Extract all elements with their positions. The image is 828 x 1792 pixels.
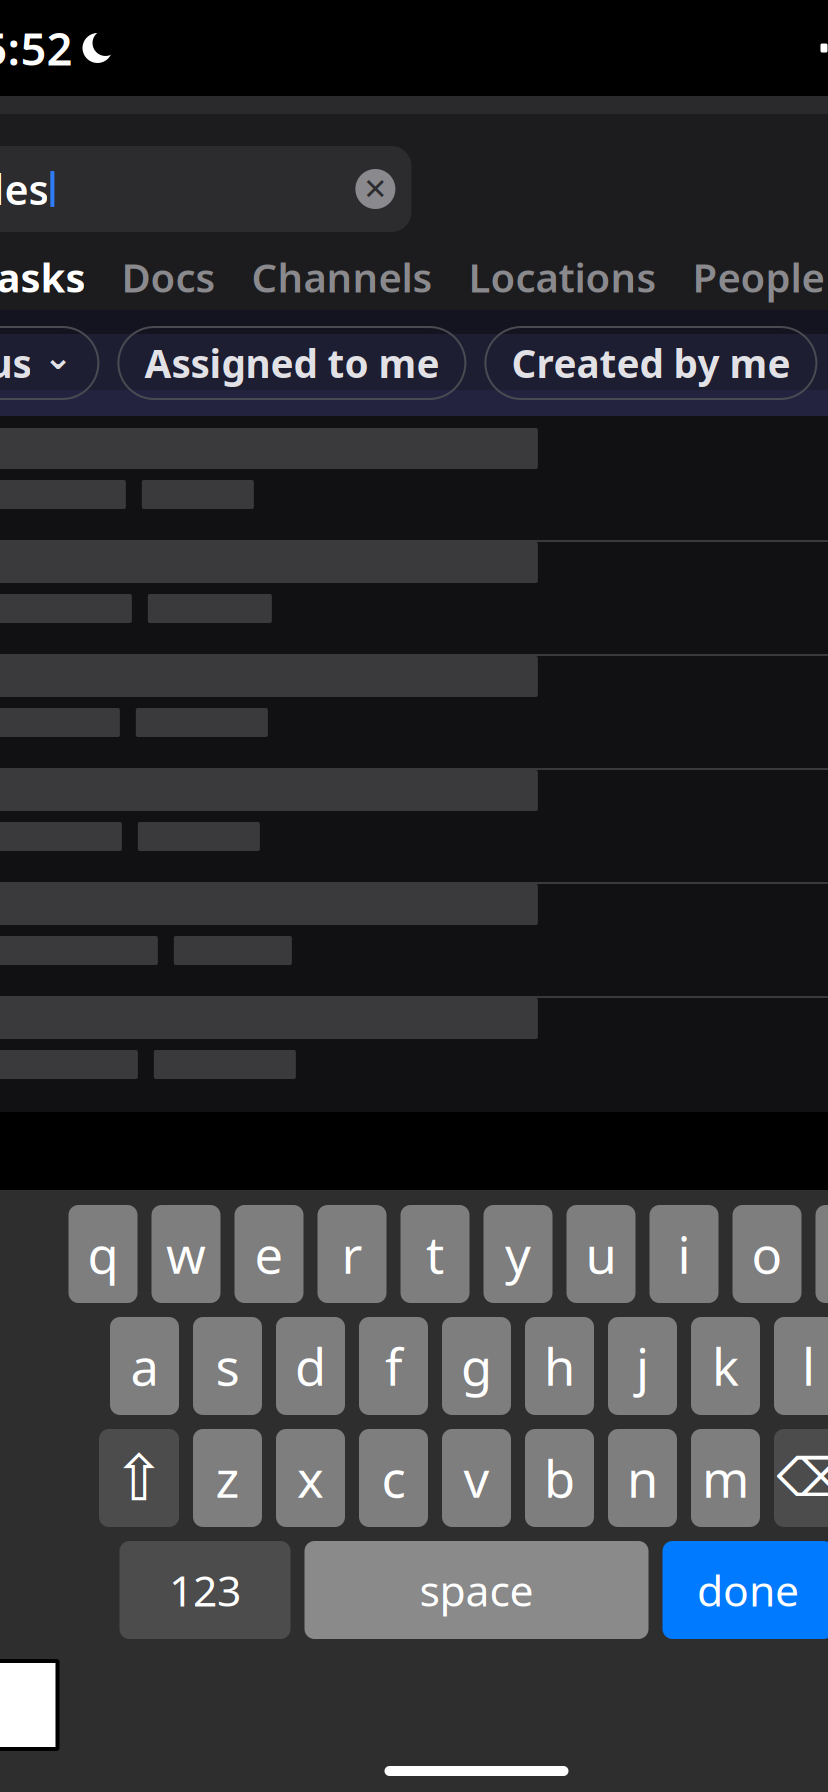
button[interactable]: Clear text [349,163,401,215]
staticText: People [692,250,824,303]
staticText: m [702,1444,749,1512]
staticText: ✕ [363,172,388,206]
staticText: e [254,1220,283,1288]
staticText: o [751,1220,782,1288]
staticText: q [87,1220,118,1288]
button[interactable]: r [317,1205,386,1303]
button[interactable]: f [359,1317,428,1415]
staticText: n [627,1444,658,1512]
staticText: files [0,162,48,216]
button[interactable]: t [400,1205,469,1303]
staticText: v [463,1444,489,1512]
button[interactable]: x [276,1429,345,1527]
button[interactable]: m [691,1429,760,1527]
staticText: 5:52 [0,18,72,78]
staticText: ⌄ [43,337,72,377]
staticText: Status [0,337,31,389]
button[interactable]: n [608,1429,677,1527]
staticText: b [544,1444,575,1512]
button[interactable]: k [691,1317,760,1415]
button[interactable]: b [525,1429,594,1527]
button[interactable]: space [304,1541,648,1639]
staticText: Assigned to me [144,337,439,389]
staticText: Tasks [0,250,85,303]
button[interactable]: g [442,1317,511,1415]
button[interactable]: Docs [103,244,233,310]
staticText: space [419,1562,533,1618]
button[interactable]: Assigned to me [118,327,465,399]
button[interactable]: s [193,1317,262,1415]
staticText: ⌫ [776,1448,828,1508]
staticText: d [295,1332,326,1400]
staticText: x [297,1444,324,1512]
staticText: Created by me [511,337,790,389]
button[interactable]: Channels [233,244,450,310]
button[interactable]: y [483,1205,552,1303]
button[interactable]: a [110,1317,179,1415]
button[interactable]: w [151,1205,220,1303]
button[interactable]: Status [0,327,98,399]
button[interactable]: v [442,1429,511,1527]
staticText: u [585,1220,616,1288]
button[interactable]: Emoji [0,1661,57,1749]
staticText: r [341,1220,362,1288]
button[interactable]: People [674,244,828,310]
button[interactable]: d [276,1317,345,1415]
button[interactable]: 123 [119,1541,290,1639]
button[interactable]: q [68,1205,137,1303]
staticText: t [426,1220,444,1288]
button[interactable]: o [732,1205,801,1303]
button[interactable]: p [815,1205,828,1303]
button[interactable]: u [566,1205,635,1303]
staticText: w [166,1220,206,1288]
staticText: c [381,1444,405,1512]
button[interactable]: c [359,1429,428,1527]
button[interactable]: Shift [99,1429,179,1527]
button[interactable]: h [525,1317,594,1415]
staticText: Docs [121,250,215,303]
button[interactable]: e [234,1205,303,1303]
button[interactable]: Locations [450,244,674,310]
staticText: 123 [169,1562,241,1618]
staticText: s [215,1332,239,1400]
button[interactable]: Tasks [0,244,103,310]
staticText: Locations [468,250,656,303]
staticText: l [802,1332,815,1400]
staticText: h [544,1332,575,1400]
button[interactable]: Delete [774,1429,828,1527]
button[interactable]: done [662,1541,828,1639]
button[interactable]: Created by me [485,327,816,399]
staticText: i [677,1220,690,1288]
staticText: a [130,1332,158,1400]
staticText: Channels [251,250,432,303]
staticText: g [461,1332,492,1400]
staticText: f [385,1332,402,1400]
staticText: y [505,1220,531,1288]
staticText: j [636,1332,649,1400]
button[interactable]: j [608,1317,677,1415]
button[interactable]: l [774,1317,828,1415]
button[interactable]: i [649,1205,718,1303]
button[interactable]: z [193,1429,262,1527]
staticText: ⇧ [112,1442,166,1514]
staticText: k [712,1332,739,1400]
staticText: done [697,1562,799,1618]
staticText: z [215,1444,239,1512]
